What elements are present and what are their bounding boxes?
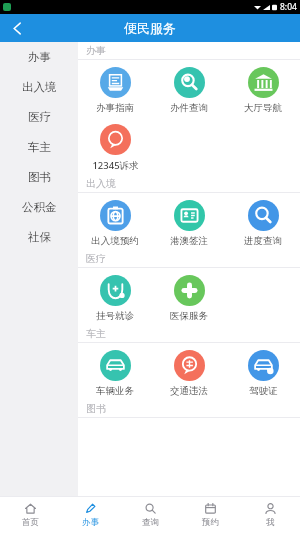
staticText: 车主	[86, 327, 106, 340]
staticText: 医疗	[28, 110, 51, 124]
staticText: 进度查询	[244, 235, 282, 247]
staticText: 医疗	[86, 252, 106, 265]
button[interactable]: 医保服务	[152, 275, 226, 322]
staticText: 办事	[86, 44, 106, 57]
staticText: 公积金	[22, 200, 57, 214]
button[interactable]: 查询	[120, 497, 180, 533]
staticText: 交通违法	[170, 385, 208, 397]
staticText: 驾驶证	[249, 385, 278, 397]
staticText: 挂号就诊	[96, 310, 134, 322]
staticText: 首页	[22, 517, 39, 528]
staticText: 预约	[202, 517, 219, 528]
button[interactable]: 挂号就诊	[78, 275, 152, 322]
button[interactable]: 办事	[0, 42, 78, 72]
staticText: 出入境	[22, 80, 57, 94]
button[interactable]: Back	[0, 14, 34, 42]
button[interactable]: 图书	[0, 162, 78, 192]
button[interactable]: 预约	[180, 497, 240, 533]
staticText: 港澳签注	[170, 235, 208, 247]
staticText: 查询	[142, 517, 159, 528]
button[interactable]: 出入境	[0, 72, 78, 102]
button[interactable]: 社保	[0, 222, 78, 252]
button[interactable]: 驾驶证	[226, 350, 300, 397]
button[interactable]: 办事	[60, 497, 120, 533]
staticText: 办件查询	[170, 102, 208, 114]
button[interactable]: 医疗	[0, 102, 78, 132]
staticText: 我	[266, 517, 275, 528]
staticText: 便民服务	[124, 20, 176, 36]
button[interactable]: 进度查询	[226, 200, 300, 247]
staticText: 社保	[28, 230, 51, 244]
button[interactable]: 首页	[0, 497, 60, 533]
staticText: 办事	[28, 50, 51, 64]
staticText: 图书	[86, 402, 106, 415]
button[interactable]: 办事指南	[78, 67, 152, 114]
button[interactable]: 办件查询	[152, 67, 226, 114]
staticText: 12345诉求	[92, 159, 139, 172]
staticText: 车辆业务	[96, 385, 134, 397]
staticText: 医保服务	[170, 310, 208, 322]
staticText: 8:04	[280, 1, 297, 13]
button[interactable]: 我	[240, 497, 300, 533]
button[interactable]: 公积金	[0, 192, 78, 222]
button[interactable]: 12345诉求	[78, 124, 152, 172]
button[interactable]: 出入境预约	[78, 200, 152, 247]
staticText: 办事	[82, 517, 99, 528]
button[interactable]: 交通违法	[152, 350, 226, 397]
button[interactable]: 大厅导航	[226, 67, 300, 114]
staticText: 出入境预约	[91, 235, 139, 247]
button[interactable]: 港澳签注	[152, 200, 226, 247]
staticText: 大厅导航	[244, 102, 282, 114]
button[interactable]: 车辆业务	[78, 350, 152, 397]
staticText: 出入境	[86, 177, 116, 190]
staticText: 图书	[28, 170, 51, 184]
staticText: 办事指南	[96, 102, 134, 114]
staticText: 车主	[28, 140, 51, 154]
button[interactable]: 车主	[0, 132, 78, 162]
